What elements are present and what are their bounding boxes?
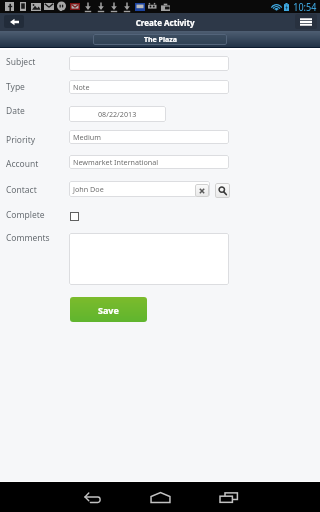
button[interactable]: Save: [70, 297, 147, 322]
button[interactable]: Menu: [295, 14, 317, 29]
staticText: Create Activity: [136, 16, 195, 29]
staticText: Comments: [6, 232, 50, 244]
staticText: Note: [73, 82, 90, 92]
button[interactable]: Note: [69, 80, 229, 94]
staticText: Contact: [6, 184, 37, 196]
staticText: Account: [6, 158, 39, 170]
staticText: 08/22/2013: [98, 109, 137, 119]
staticText: 10:54: [293, 0, 317, 13]
button[interactable]: Clear: [195, 184, 209, 197]
button[interactable]: Recent apps: [206, 482, 251, 512]
button[interactable]: The Plaza: [93, 34, 227, 45]
staticText: Type: [6, 81, 25, 93]
button[interactable]: John Doe: [69, 181, 210, 197]
button[interactable]: Newmarket International: [69, 155, 229, 169]
staticText: Subject: [6, 56, 36, 68]
staticText: Priority: [6, 134, 36, 146]
button[interactable]: 08/22/2013: [69, 106, 166, 122]
button[interactable]: Search: [215, 183, 230, 198]
button[interactable]: Home: [138, 482, 183, 512]
staticText: Date: [6, 105, 25, 117]
button[interactable]: Back: [4, 15, 24, 28]
staticText: Complete: [6, 209, 45, 221]
button[interactable]: Complete: [70, 212, 79, 221]
staticText: Save: [98, 304, 119, 316]
staticText: John Doe: [73, 184, 104, 194]
button[interactable]: [69, 233, 229, 285]
staticText: Medium: [73, 132, 102, 142]
staticText: The Plaza: [144, 35, 177, 45]
button[interactable]: Medium: [69, 130, 229, 144]
staticText: Newmarket International: [73, 157, 159, 167]
button[interactable]: [69, 56, 229, 71]
button[interactable]: Back: [70, 482, 115, 512]
